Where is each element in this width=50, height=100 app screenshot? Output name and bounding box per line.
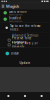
staticText: Preserve force encryption [12,37,32,44]
button[interactable]: Preserve AVB 2.0/dm-verity [0,42,50,47]
button[interactable]: Settings [33,92,50,100]
staticText: Magisk [6,3,19,9]
staticText: Latest version [9,10,27,13]
button[interactable]: Menu [0,3,6,10]
button[interactable]: Latest version [0,10,50,16]
button[interactable]: Home [0,92,17,100]
staticText: Magisk 27.0 (27000) [9,14,22,16]
button[interactable]: Tap to see the release notes [0,23,50,32]
staticText: Install [11,52,19,55]
button[interactable]: Preserve force encryption [0,38,50,42]
staticText: Preserve AVB 2.0/dm-verity [12,41,38,48]
button[interactable]: Installed [0,16,50,22]
staticText: Tap to see the release notes [10,24,41,31]
staticText: Update [19,61,30,65]
staticText: Installed [9,16,21,20]
staticText: Advanced Settings [12,34,38,37]
button[interactable]: Update [0,59,50,67]
button[interactable]: Modules [17,92,33,100]
staticText: Magisk 26.4 (26400) [9,20,22,22]
